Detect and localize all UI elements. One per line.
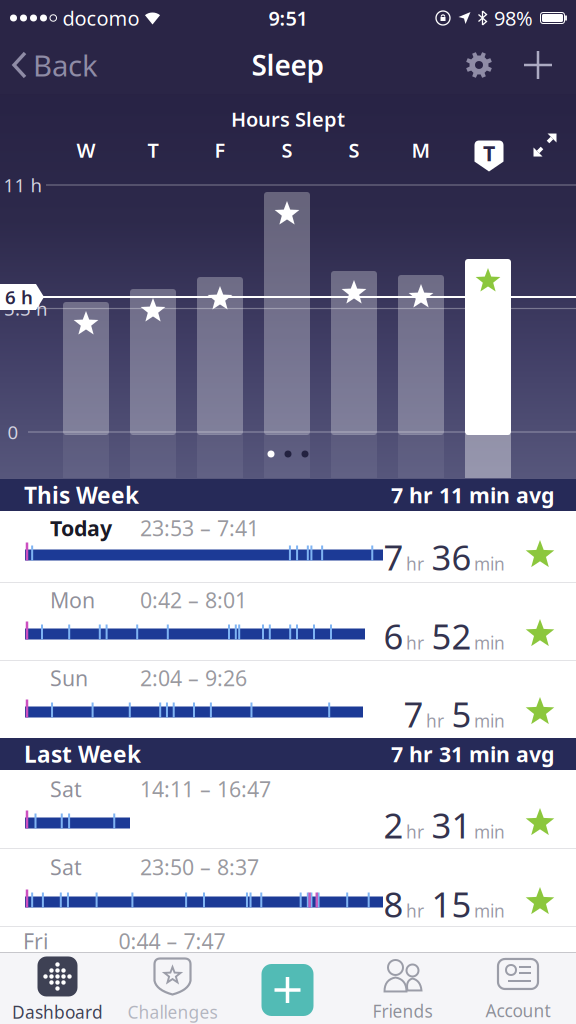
staticText: 9:51	[268, 5, 307, 31]
button[interactable]: Back	[0, 45, 98, 84]
staticText: Last Week	[24, 739, 141, 769]
staticText: 5	[451, 691, 471, 737]
staticText: 7	[403, 691, 423, 737]
button[interactable]: Today	[0, 511, 576, 582]
staticText: min	[474, 709, 505, 732]
staticText: 23:53 – 7:41	[140, 514, 259, 542]
staticText: Today	[50, 514, 112, 542]
staticText: Challenges	[127, 1000, 217, 1023]
button[interactable]: Sat	[0, 770, 576, 848]
staticText: W	[76, 137, 95, 163]
staticText: 98%	[494, 5, 533, 31]
button[interactable]: Challenges	[115, 955, 230, 1024]
staticText: 0	[7, 420, 18, 444]
staticText: 52	[431, 613, 471, 659]
staticText: F	[214, 137, 225, 163]
staticText: Sleep	[251, 46, 324, 84]
button[interactable]: Dashboard	[0, 955, 115, 1024]
staticText: docomo	[62, 5, 139, 31]
staticText: 7 hr 31 min avg	[391, 740, 554, 768]
staticText: hr	[426, 709, 449, 732]
staticText: 23:50 – 8:37	[140, 853, 259, 881]
staticText: hr	[406, 820, 429, 843]
staticText: 2	[383, 802, 403, 848]
staticText: 14:11 – 16:47	[140, 775, 271, 803]
staticText: 7	[383, 534, 403, 580]
staticText: min	[474, 820, 505, 843]
button[interactable]: Settings	[464, 50, 494, 80]
staticText: 6	[383, 613, 403, 659]
staticText: Account	[485, 999, 550, 1022]
staticText: 31	[431, 802, 471, 848]
staticText: min	[474, 899, 505, 922]
staticText: 2:04 – 9:26	[140, 664, 247, 692]
staticText: 6 h	[5, 285, 33, 309]
staticText: hr	[406, 631, 429, 654]
staticText: Sat	[50, 775, 82, 803]
staticText: 0:42 – 8:01	[140, 586, 247, 614]
staticText: 11 h	[3, 173, 42, 197]
staticText: S	[348, 137, 359, 163]
button[interactable]: Sun	[0, 661, 576, 738]
staticText: 36	[431, 534, 471, 580]
staticText: 8	[383, 881, 403, 927]
staticText: 0:44 – 7:47	[118, 927, 225, 955]
staticText: min	[474, 631, 505, 654]
staticText: Sat	[50, 853, 82, 881]
staticText: 15	[431, 881, 471, 927]
button[interactable]: Friends	[345, 955, 460, 1024]
staticText: This Week	[24, 480, 139, 510]
staticText: Friends	[372, 999, 432, 1022]
button[interactable]: Mon	[0, 583, 576, 660]
staticText: Mon	[50, 586, 95, 614]
button[interactable]: Expand chart	[532, 132, 558, 158]
staticText: T	[483, 139, 495, 167]
button[interactable]: Log	[230, 955, 345, 1024]
staticText: M	[411, 137, 430, 163]
staticText: S	[281, 137, 292, 163]
button[interactable]: Account	[460, 955, 576, 1024]
staticText: Sun	[50, 664, 88, 692]
staticText: T	[147, 137, 158, 163]
staticText: 5.5 h	[4, 296, 48, 321]
button[interactable]: Sat	[0, 849, 576, 926]
button[interactable]: Add	[524, 51, 552, 79]
staticText: hr	[406, 899, 429, 922]
staticText: min	[474, 552, 505, 575]
staticText: Fri	[23, 927, 49, 955]
staticText: Hours Slept	[231, 106, 345, 132]
staticText: Dashboard	[12, 1000, 103, 1023]
staticText: 7 hr 11 min avg	[391, 481, 554, 509]
staticText: Back	[33, 45, 98, 84]
staticText: hr	[406, 552, 429, 575]
